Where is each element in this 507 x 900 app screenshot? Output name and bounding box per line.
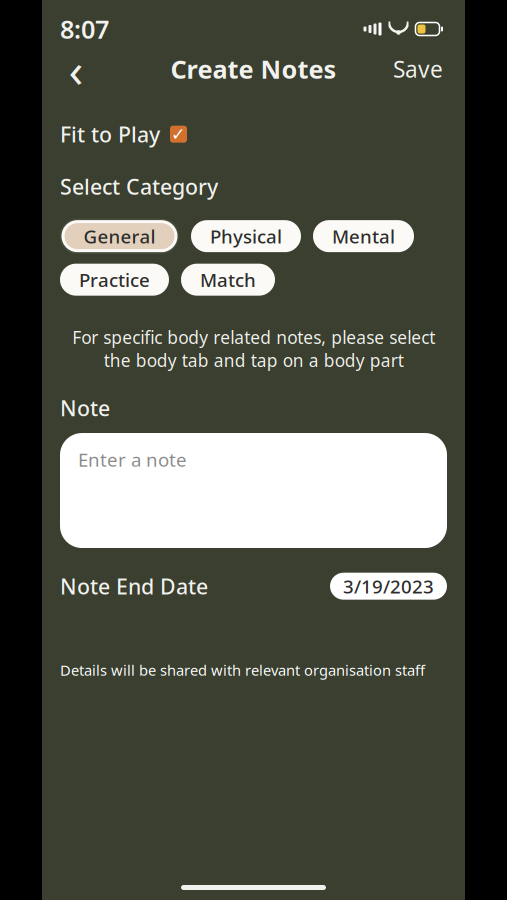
staticText: Note bbox=[60, 394, 110, 422]
staticText: Match bbox=[200, 267, 256, 292]
staticText: Details will be shared with relevant org… bbox=[60, 660, 425, 680]
button[interactable]: Back bbox=[54, 47, 98, 91]
button[interactable]: General bbox=[60, 219, 179, 254]
staticText: ✓ bbox=[171, 124, 186, 144]
staticText: 8:07 bbox=[60, 12, 109, 46]
staticText: Physical bbox=[210, 224, 282, 249]
staticText: Create Notes bbox=[170, 52, 336, 86]
staticText: Save bbox=[393, 54, 443, 84]
staticText: Practice bbox=[79, 267, 150, 292]
staticText: Select Category bbox=[60, 172, 218, 201]
button[interactable]: Match bbox=[181, 264, 275, 296]
button[interactable]: Physical bbox=[191, 220, 301, 252]
staticText: Fit to Play bbox=[60, 120, 160, 148]
staticText: ‹ bbox=[68, 37, 83, 101]
staticText: 3/19/2023 bbox=[343, 574, 434, 599]
button[interactable]: Mental bbox=[313, 220, 414, 252]
button[interactable]: Fit to Play bbox=[60, 120, 188, 148]
staticText: General bbox=[83, 224, 155, 249]
staticText: For specific body related notes, please … bbox=[72, 326, 435, 372]
staticText: Note End Date bbox=[60, 572, 208, 600]
staticText: Mental bbox=[332, 224, 395, 249]
button[interactable]: Practice bbox=[60, 264, 169, 296]
staticText: Enter a note bbox=[78, 447, 187, 472]
button[interactable]: 3/19/2023 bbox=[330, 573, 447, 600]
button[interactable]: Save bbox=[383, 47, 453, 91]
button[interactable]: Enter a note bbox=[60, 433, 447, 548]
